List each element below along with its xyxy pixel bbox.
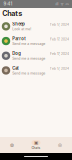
button[interactable]: Parrot xyxy=(0,34,72,48)
button[interactable]: Dog xyxy=(0,48,72,63)
staticText: Look at me! xyxy=(12,27,31,31)
staticText: ıll ᯤ ▭ xyxy=(55,2,68,6)
staticText: Chats xyxy=(31,146,40,150)
staticText: ◍ xyxy=(10,142,14,148)
staticText: Dog xyxy=(12,51,21,56)
staticText: Cat xyxy=(12,66,18,71)
button[interactable]: ▣ xyxy=(24,137,48,153)
staticText: 9:41 xyxy=(3,1,12,7)
staticText: Feb 17, 2024 xyxy=(50,52,69,56)
staticText: Send me a message xyxy=(12,56,45,61)
button[interactable]: Sheep xyxy=(0,19,72,34)
staticText: Sheep xyxy=(12,22,25,27)
staticText: Chats xyxy=(2,9,22,18)
staticText: Send me a message xyxy=(12,42,45,46)
staticText: Feb 17, 2024 xyxy=(50,23,69,26)
staticText: ◎ xyxy=(58,142,62,148)
button[interactable]: Cat xyxy=(0,63,72,78)
staticText: ▣ xyxy=(34,140,38,145)
staticText: Feb 17, 2024 xyxy=(50,37,69,41)
button[interactable]: Settings xyxy=(48,137,72,153)
staticText: Feb 17, 2024 xyxy=(50,67,69,71)
staticText: Send me a message xyxy=(12,71,45,75)
button[interactable]: Calls xyxy=(0,137,24,153)
staticText: Parrot xyxy=(12,36,25,41)
